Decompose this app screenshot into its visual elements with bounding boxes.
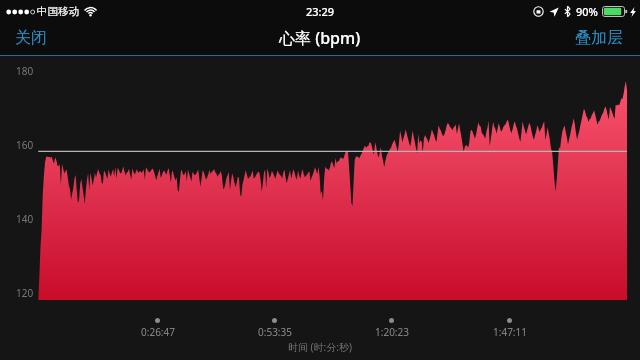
- staticText: 0:26:47: [134, 325, 182, 339]
- staticText: 1:47:11: [486, 325, 534, 339]
- button[interactable]: 关闭: [0, 22, 76, 56]
- staticText: 中国移动: [37, 5, 79, 18]
- staticText: 关闭: [15, 28, 47, 48]
- staticText: 180: [16, 64, 34, 78]
- staticText: 0:53:35: [251, 325, 299, 339]
- staticText: 心率 (bpm): [279, 27, 361, 49]
- staticText: 叠加层: [575, 28, 623, 48]
- staticText: 160: [16, 138, 34, 152]
- staticText: 140: [16, 212, 34, 226]
- button[interactable]: 叠加层: [562, 22, 640, 56]
- staticText: 时间 (时:分:秒): [288, 340, 352, 354]
- staticText: 120: [16, 286, 34, 300]
- staticText: 90%: [576, 4, 598, 19]
- staticText: 1:20:23: [368, 325, 416, 339]
- staticText: 23:29: [306, 4, 335, 19]
